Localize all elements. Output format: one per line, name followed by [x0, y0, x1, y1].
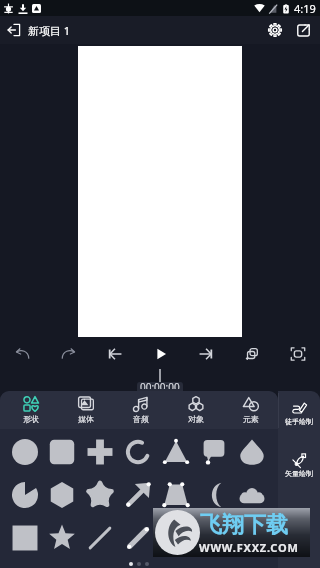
button[interactable]: 矢量绘制: [278, 447, 320, 499]
staticText: 4:19: [294, 1, 316, 16]
button[interactable]: Shape 14: [233, 473, 271, 516]
button[interactable]: Shape 4: [119, 430, 157, 473]
staticText: 矢量绘制: [285, 469, 313, 478]
staticText: 新项目 1: [28, 23, 71, 38]
staticText: 音频: [133, 414, 149, 424]
button[interactable]: Shape 5: [157, 430, 195, 473]
button[interactable]: Skip to end: [192, 340, 219, 367]
button[interactable]: Shape 7: [233, 430, 271, 473]
button[interactable]: Back: [0, 16, 28, 44]
button[interactable]: Settings: [261, 16, 289, 44]
button[interactable]: Duplicate: [238, 340, 265, 367]
staticText: 元素: [243, 414, 259, 424]
button[interactable]: 对象: [168, 391, 223, 429]
button[interactable]: Redo: [55, 340, 82, 367]
button[interactable]: Undo: [9, 340, 36, 367]
button[interactable]: 徒手绘制: [278, 395, 320, 447]
button[interactable]: Shape 10: [81, 473, 119, 516]
staticText: Aa: [291, 505, 308, 519]
button[interactable]: Shape 19: [157, 516, 195, 559]
button[interactable]: Shape 3: [81, 430, 119, 473]
button[interactable]: Fit to screen: [284, 340, 311, 367]
button[interactable]: Shape 15: [6, 516, 43, 559]
button[interactable]: 媒体: [58, 391, 113, 429]
button[interactable]: Shape 12: [157, 473, 195, 516]
button[interactable]: 形状: [3, 391, 58, 429]
staticText: 文本: [292, 520, 306, 529]
button[interactable]: Shape 8: [6, 473, 43, 516]
staticText: 对象: [188, 414, 204, 424]
staticText: 00:00:00: [140, 382, 180, 389]
button[interactable]: Shape 1: [6, 430, 43, 473]
button[interactable]: Aa: [278, 499, 320, 551]
button[interactable]: Shape 16: [43, 516, 81, 559]
button[interactable]: Shape 20: [195, 516, 233, 559]
button[interactable]: Shape 11: [119, 473, 157, 516]
button[interactable]: Export: [289, 16, 317, 44]
button[interactable]: Shape 18: [119, 516, 157, 559]
button[interactable]: Shape 2: [43, 430, 81, 473]
button[interactable]: Shape 17: [81, 516, 119, 559]
staticText: 飞翔下载: [200, 511, 288, 539]
button[interactable]: Shape 13: [195, 473, 233, 516]
staticText: 徒手绘制: [285, 417, 313, 426]
staticText: 形状: [23, 414, 39, 424]
button[interactable]: 元素: [223, 391, 278, 429]
button[interactable]: Shape 6: [195, 430, 233, 473]
button[interactable]: Skip to start: [101, 340, 128, 367]
button[interactable]: Play: [147, 340, 174, 367]
button[interactable]: 音频: [113, 391, 168, 429]
button[interactable]: Shape 9: [43, 473, 81, 516]
button[interactable]: Shape 21: [233, 516, 271, 559]
staticText: WWW.FXXZ.COM: [199, 540, 299, 555]
staticText: 媒体: [78, 414, 94, 424]
